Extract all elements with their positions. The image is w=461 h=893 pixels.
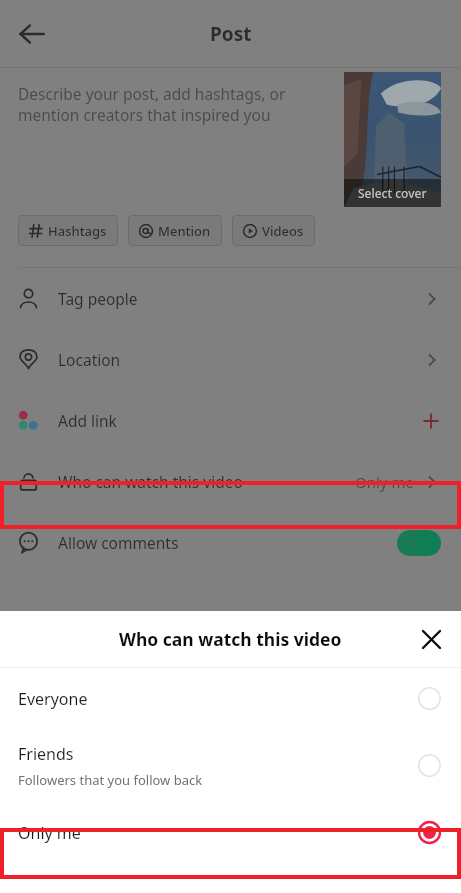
button[interactable]: Add link — [0, 390, 461, 451]
staticText: Who can watch this video — [58, 471, 243, 492]
staticText: Tag people — [58, 288, 138, 309]
button[interactable]: Back — [8, 10, 56, 58]
button[interactable]: Everyone — [0, 668, 461, 729]
button[interactable]: Tag people — [0, 268, 461, 329]
staticText: Everyone — [18, 688, 88, 710]
staticText: Post — [210, 21, 252, 47]
staticText: Hashtags — [48, 222, 107, 240]
button[interactable]: Who can watch this video — [0, 451, 461, 512]
staticText: Add link — [58, 410, 117, 431]
button[interactable]: Allow comments — [0, 512, 461, 573]
button[interactable]: Friends — [0, 729, 461, 802]
button[interactable]: Close — [409, 617, 453, 661]
staticText: Location — [58, 349, 121, 370]
staticText: Friends — [18, 743, 74, 765]
staticText: Videos — [262, 222, 304, 240]
staticText: Select cover — [358, 185, 427, 201]
staticText: Only me — [355, 472, 414, 492]
staticText: Who can watch this video — [119, 627, 342, 651]
staticText: Followers that you follow back — [18, 771, 203, 789]
staticText: Only me — [18, 822, 81, 844]
staticText: Describe your post, add hashtags, or men… — [18, 83, 344, 126]
button[interactable]: Hashtags — [18, 215, 118, 246]
staticText: Mention — [158, 222, 211, 240]
button[interactable]: Only me — [0, 802, 461, 863]
button[interactable]: Mention — [128, 215, 222, 246]
button[interactable]: Videos — [232, 215, 315, 246]
staticText: Allow comments — [58, 532, 179, 553]
button[interactable]: Select cover — [344, 72, 441, 207]
button[interactable]: Location — [0, 329, 461, 390]
